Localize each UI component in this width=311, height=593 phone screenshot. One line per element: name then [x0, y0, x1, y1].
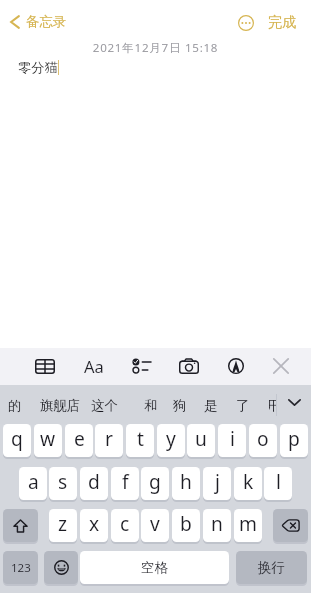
staticText: 狗: [173, 397, 187, 414]
button[interactable]: 开: [269, 387, 277, 423]
staticText: t: [137, 425, 144, 451]
staticText: j: [215, 468, 220, 494]
staticText: f: [122, 468, 129, 494]
button[interactable]: e: [65, 424, 93, 457]
button[interactable]: u: [187, 424, 215, 457]
button[interactable]: Markup: [219, 349, 253, 383]
button[interactable]: 这个: [86, 387, 123, 423]
button[interactable]: 是: [199, 387, 223, 423]
button[interactable]: 备忘录: [6, 8, 71, 36]
staticText: x: [89, 510, 100, 536]
button[interactable]: r: [95, 424, 123, 457]
button[interactable]: k: [234, 467, 262, 500]
staticText: 旗舰店: [40, 397, 81, 414]
staticText: 零分猫: [18, 59, 58, 76]
button[interactable]: Emoji: [44, 551, 78, 584]
button[interactable]: i: [218, 424, 246, 457]
staticText: d: [88, 468, 100, 494]
button[interactable]: 换行: [236, 551, 307, 584]
button[interactable]: h: [172, 467, 200, 500]
staticText: g: [149, 468, 161, 494]
staticText: y: [166, 425, 176, 451]
button[interactable]: n: [203, 509, 231, 542]
staticText: 备忘录: [26, 13, 67, 30]
button[interactable]: t: [126, 424, 154, 457]
button[interactable]: More options: [234, 11, 257, 34]
button[interactable]: Close keyboard: [264, 349, 298, 383]
staticText: v: [150, 510, 160, 536]
staticText: n: [211, 510, 223, 536]
staticText: 这个: [91, 397, 118, 414]
staticText: 空格: [141, 559, 168, 576]
button[interactable]: m: [234, 509, 262, 542]
staticText: 完成: [268, 13, 297, 31]
button[interactable]: Camera: [172, 349, 206, 383]
button[interactable]: c: [111, 509, 139, 542]
button[interactable]: g: [141, 467, 169, 500]
button[interactable]: More suggestions: [278, 385, 311, 419]
button[interactable]: l: [264, 467, 292, 500]
button[interactable]: Shift: [3, 509, 38, 542]
button[interactable]: a: [19, 467, 47, 500]
staticText: p: [288, 425, 300, 451]
staticText: q: [11, 425, 23, 451]
button[interactable]: j: [203, 467, 231, 500]
button[interactable]: 的: [3, 387, 27, 423]
button[interactable]: z: [49, 509, 77, 542]
staticText: 和: [144, 397, 158, 414]
staticText: h: [180, 468, 192, 494]
button[interactable]: Table: [28, 349, 62, 383]
button[interactable]: 完成: [263, 8, 302, 36]
staticText: l: [276, 468, 281, 494]
staticText: r: [105, 425, 113, 451]
staticText: 123: [11, 560, 31, 576]
button[interactable]: o: [249, 424, 277, 457]
button[interactable]: d: [80, 467, 108, 500]
staticText: o: [257, 425, 269, 451]
button[interactable]: Aa: [77, 349, 111, 383]
button[interactable]: y: [157, 424, 185, 457]
button[interactable]: 空格: [80, 551, 229, 584]
button[interactable]: p: [280, 424, 308, 457]
button[interactable]: 和: [139, 387, 163, 423]
button[interactable]: Delete: [273, 509, 308, 542]
button[interactable]: w: [34, 424, 62, 457]
staticText: a: [28, 468, 39, 494]
button[interactable]: q: [3, 424, 31, 457]
button[interactable]: f: [111, 467, 139, 500]
staticText: m: [239, 510, 257, 536]
button[interactable]: b: [172, 509, 200, 542]
staticText: i: [230, 425, 235, 451]
staticText: 2021年12月7日 15:18: [0, 40, 311, 56]
staticText: 了: [236, 397, 250, 414]
staticText: e: [74, 425, 85, 451]
button[interactable]: x: [80, 509, 108, 542]
button[interactable]: s: [49, 467, 77, 500]
button[interactable]: 123: [3, 551, 38, 584]
staticText: Aa: [84, 355, 104, 377]
button[interactable]: 狗: [168, 387, 192, 423]
staticText: 是: [204, 397, 218, 414]
staticText: b: [180, 510, 192, 536]
staticText: s: [58, 468, 68, 494]
button[interactable]: 旗舰店: [35, 387, 86, 423]
staticText: 换行: [258, 559, 285, 576]
button[interactable]: 了: [231, 387, 255, 423]
staticText: 开: [269, 397, 273, 414]
staticText: 的: [8, 397, 22, 414]
staticText: k: [243, 468, 254, 494]
staticText: w: [40, 425, 56, 451]
button[interactable]: Checklist: [124, 349, 158, 383]
staticText: z: [58, 510, 68, 536]
button[interactable]: v: [141, 509, 169, 542]
staticText: u: [195, 425, 207, 451]
staticText: c: [120, 510, 130, 536]
